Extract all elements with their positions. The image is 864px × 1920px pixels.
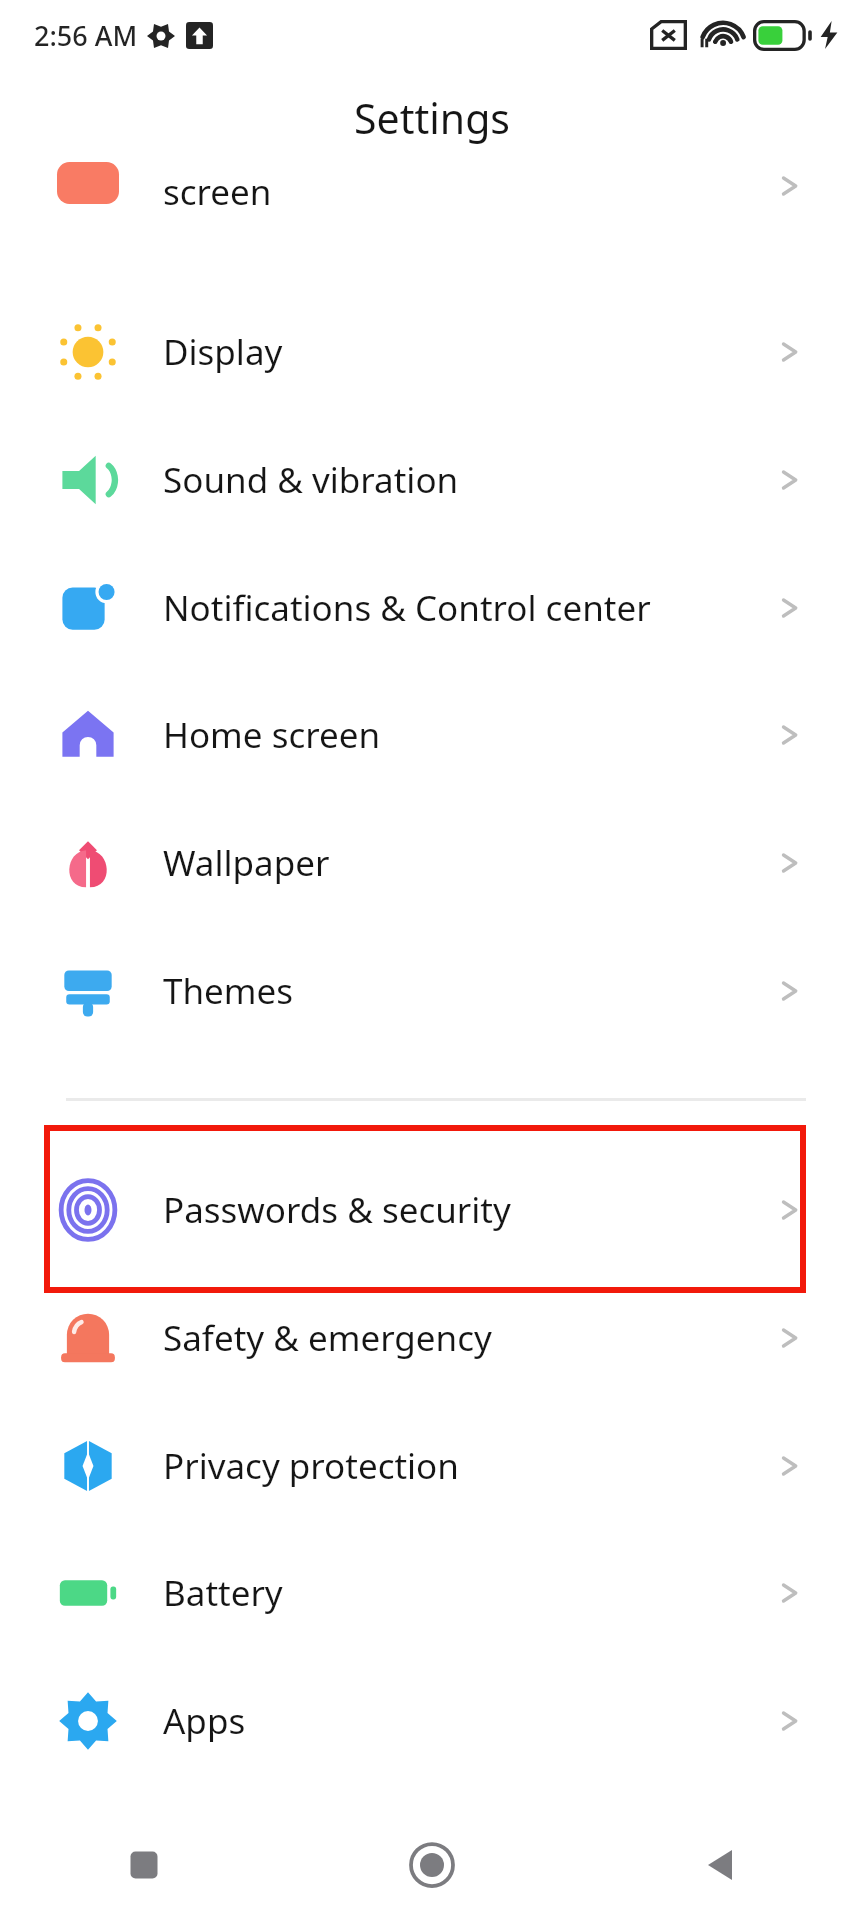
- button[interactable]: Privacy protection: [0, 1402, 864, 1530]
- staticText: 2:56 AM: [34, 17, 138, 54]
- staticText: Apps: [163, 1697, 246, 1745]
- staticText: Home screen: [163, 711, 381, 759]
- button[interactable]: Themes: [0, 927, 864, 1055]
- staticText: Settings: [354, 90, 511, 146]
- button[interactable]: Safety & emergency: [0, 1274, 864, 1402]
- button[interactable]: Display: [0, 288, 864, 416]
- button[interactable]: Recents: [0, 1810, 288, 1920]
- button[interactable]: Sound & vibration: [0, 416, 864, 544]
- button[interactable]: Notifications & Control center: [0, 544, 864, 672]
- button[interactable]: Home: [288, 1810, 576, 1920]
- staticText: Wallpaper: [163, 839, 330, 887]
- staticText: Passwords & security: [163, 1186, 511, 1234]
- staticText: Battery: [163, 1569, 283, 1617]
- staticText: Privacy protection: [163, 1442, 459, 1490]
- staticText: Notifications & Control center: [163, 584, 651, 632]
- button[interactable]: Home screen: [0, 671, 864, 799]
- staticText: Sound & vibration: [163, 456, 459, 504]
- button[interactable]: Apps: [0, 1657, 864, 1785]
- button[interactable]: screen: [0, 160, 864, 256]
- staticText: screen: [163, 168, 272, 216]
- staticText: Themes: [163, 967, 294, 1015]
- staticText: Safety & emergency: [163, 1314, 492, 1362]
- staticText: Display: [163, 328, 283, 376]
- button[interactable]: Back: [576, 1810, 864, 1920]
- button[interactable]: Battery: [0, 1529, 864, 1657]
- button[interactable]: Passwords & security: [0, 1146, 864, 1274]
- button[interactable]: Wallpaper: [0, 799, 864, 927]
